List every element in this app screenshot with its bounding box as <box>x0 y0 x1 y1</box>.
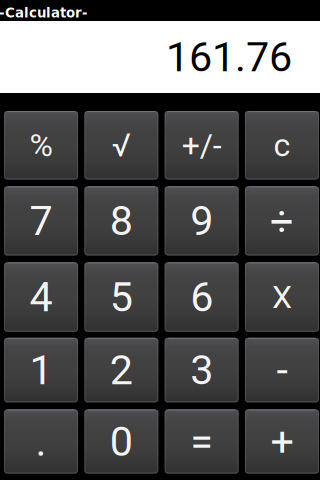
staticText: 4 <box>30 273 53 321</box>
staticText: + <box>270 417 293 466</box>
button[interactable]: % <box>4 111 78 179</box>
button[interactable]: 7 <box>4 186 78 255</box>
staticText: 7 <box>30 197 53 245</box>
button[interactable]: X <box>245 262 319 332</box>
staticText: -Calculator- <box>0 5 88 21</box>
button[interactable]: 2 <box>84 338 158 402</box>
button[interactable]: √ <box>84 111 158 179</box>
button[interactable]: 0 <box>84 409 158 474</box>
button[interactable]: c <box>245 111 319 179</box>
button[interactable]: - <box>245 338 319 402</box>
button[interactable]: ÷ <box>245 186 319 255</box>
button[interactable]: 8 <box>84 186 158 255</box>
button[interactable]: 3 <box>165 338 239 402</box>
button[interactable]: 1 <box>4 338 78 402</box>
staticText: √ <box>112 126 131 164</box>
staticText: 5 <box>110 273 133 321</box>
staticText: +/- <box>182 126 222 164</box>
button[interactable]: = <box>165 409 239 474</box>
staticText: 8 <box>110 197 133 245</box>
staticText: % <box>30 126 53 164</box>
button[interactable]: 9 <box>165 186 239 255</box>
staticText: = <box>190 417 213 466</box>
staticText: 3 <box>190 346 213 394</box>
staticText: ÷ <box>270 197 294 245</box>
button[interactable]: 6 <box>165 262 239 332</box>
button[interactable]: . <box>4 409 78 474</box>
button[interactable]: 4 <box>4 262 78 332</box>
staticText: - <box>276 346 287 394</box>
button[interactable]: + <box>245 409 319 474</box>
staticText: c <box>273 126 290 164</box>
button[interactable]: +/- <box>165 111 239 179</box>
staticText: 161.76 <box>166 33 292 81</box>
staticText: 1 <box>30 346 53 394</box>
staticText: 2 <box>110 346 133 394</box>
staticText: 9 <box>190 197 213 245</box>
staticText: 0 <box>110 417 133 466</box>
staticText: X <box>272 278 292 316</box>
staticText: 6 <box>190 273 213 321</box>
button[interactable]: 5 <box>84 262 158 332</box>
staticText: . <box>36 417 47 466</box>
